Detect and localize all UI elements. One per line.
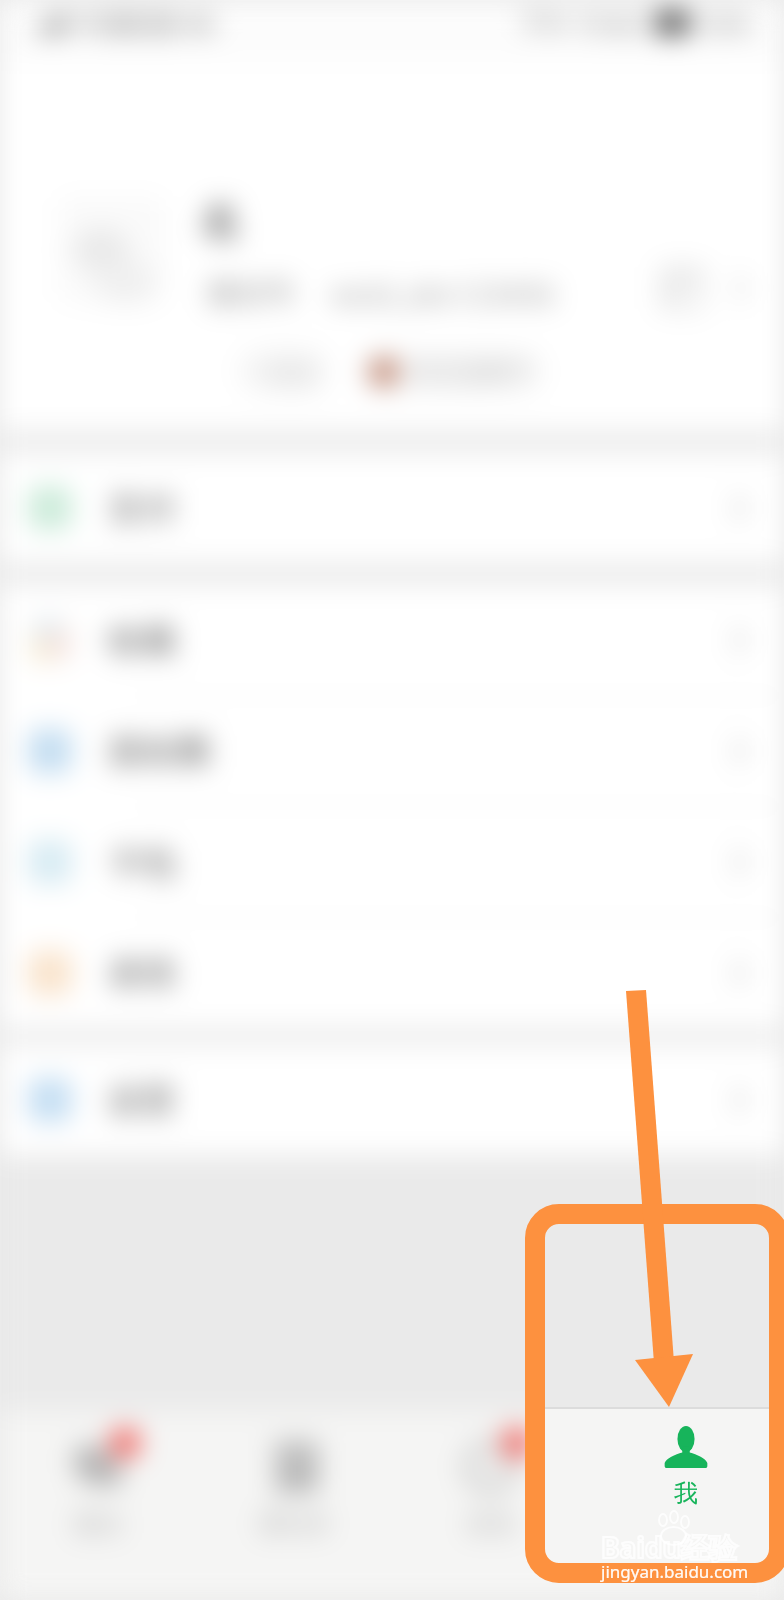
button[interactable]: 发现 (392, 1409, 588, 1600)
button[interactable]: 通讯录 (196, 1409, 392, 1600)
button[interactable]: 微信 (0, 1409, 196, 1600)
button[interactable]: 卡包 (0, 807, 784, 917)
staticText: 卡包 (108, 841, 176, 884)
staticText: wxid_abc123456 (331, 274, 555, 313)
staticText: 下午 15:42 (519, 6, 640, 40)
staticText: 中国联通 4G (76, 6, 216, 40)
button[interactable]: 我 (588, 1409, 784, 1600)
staticText: 支付 (108, 487, 176, 530)
staticText: 我 (674, 1478, 698, 1508)
button[interactable]: 朋友圈 (0, 696, 784, 806)
staticText: 设置 (108, 1079, 176, 1122)
button[interactable]: 表情 (0, 918, 784, 1028)
staticText: 状态提醒中 (409, 356, 534, 387)
button[interactable]: 收藏 (0, 585, 784, 695)
staticText: 微信号 (208, 275, 295, 312)
staticText: jingyan.baidu.com (601, 1560, 749, 1583)
staticText: 我 (674, 1509, 698, 1539)
staticText: 名 (200, 196, 242, 249)
button[interactable]: 支付 (0, 453, 784, 563)
button[interactable]: 我 (545, 1224, 769, 1564)
staticText: 收藏 (108, 619, 176, 662)
button[interactable]: 设置 (0, 1045, 784, 1155)
staticText: 朋友圈 (108, 730, 210, 773)
staticText: 88% (706, 8, 752, 39)
staticText: 表情 (108, 952, 176, 995)
